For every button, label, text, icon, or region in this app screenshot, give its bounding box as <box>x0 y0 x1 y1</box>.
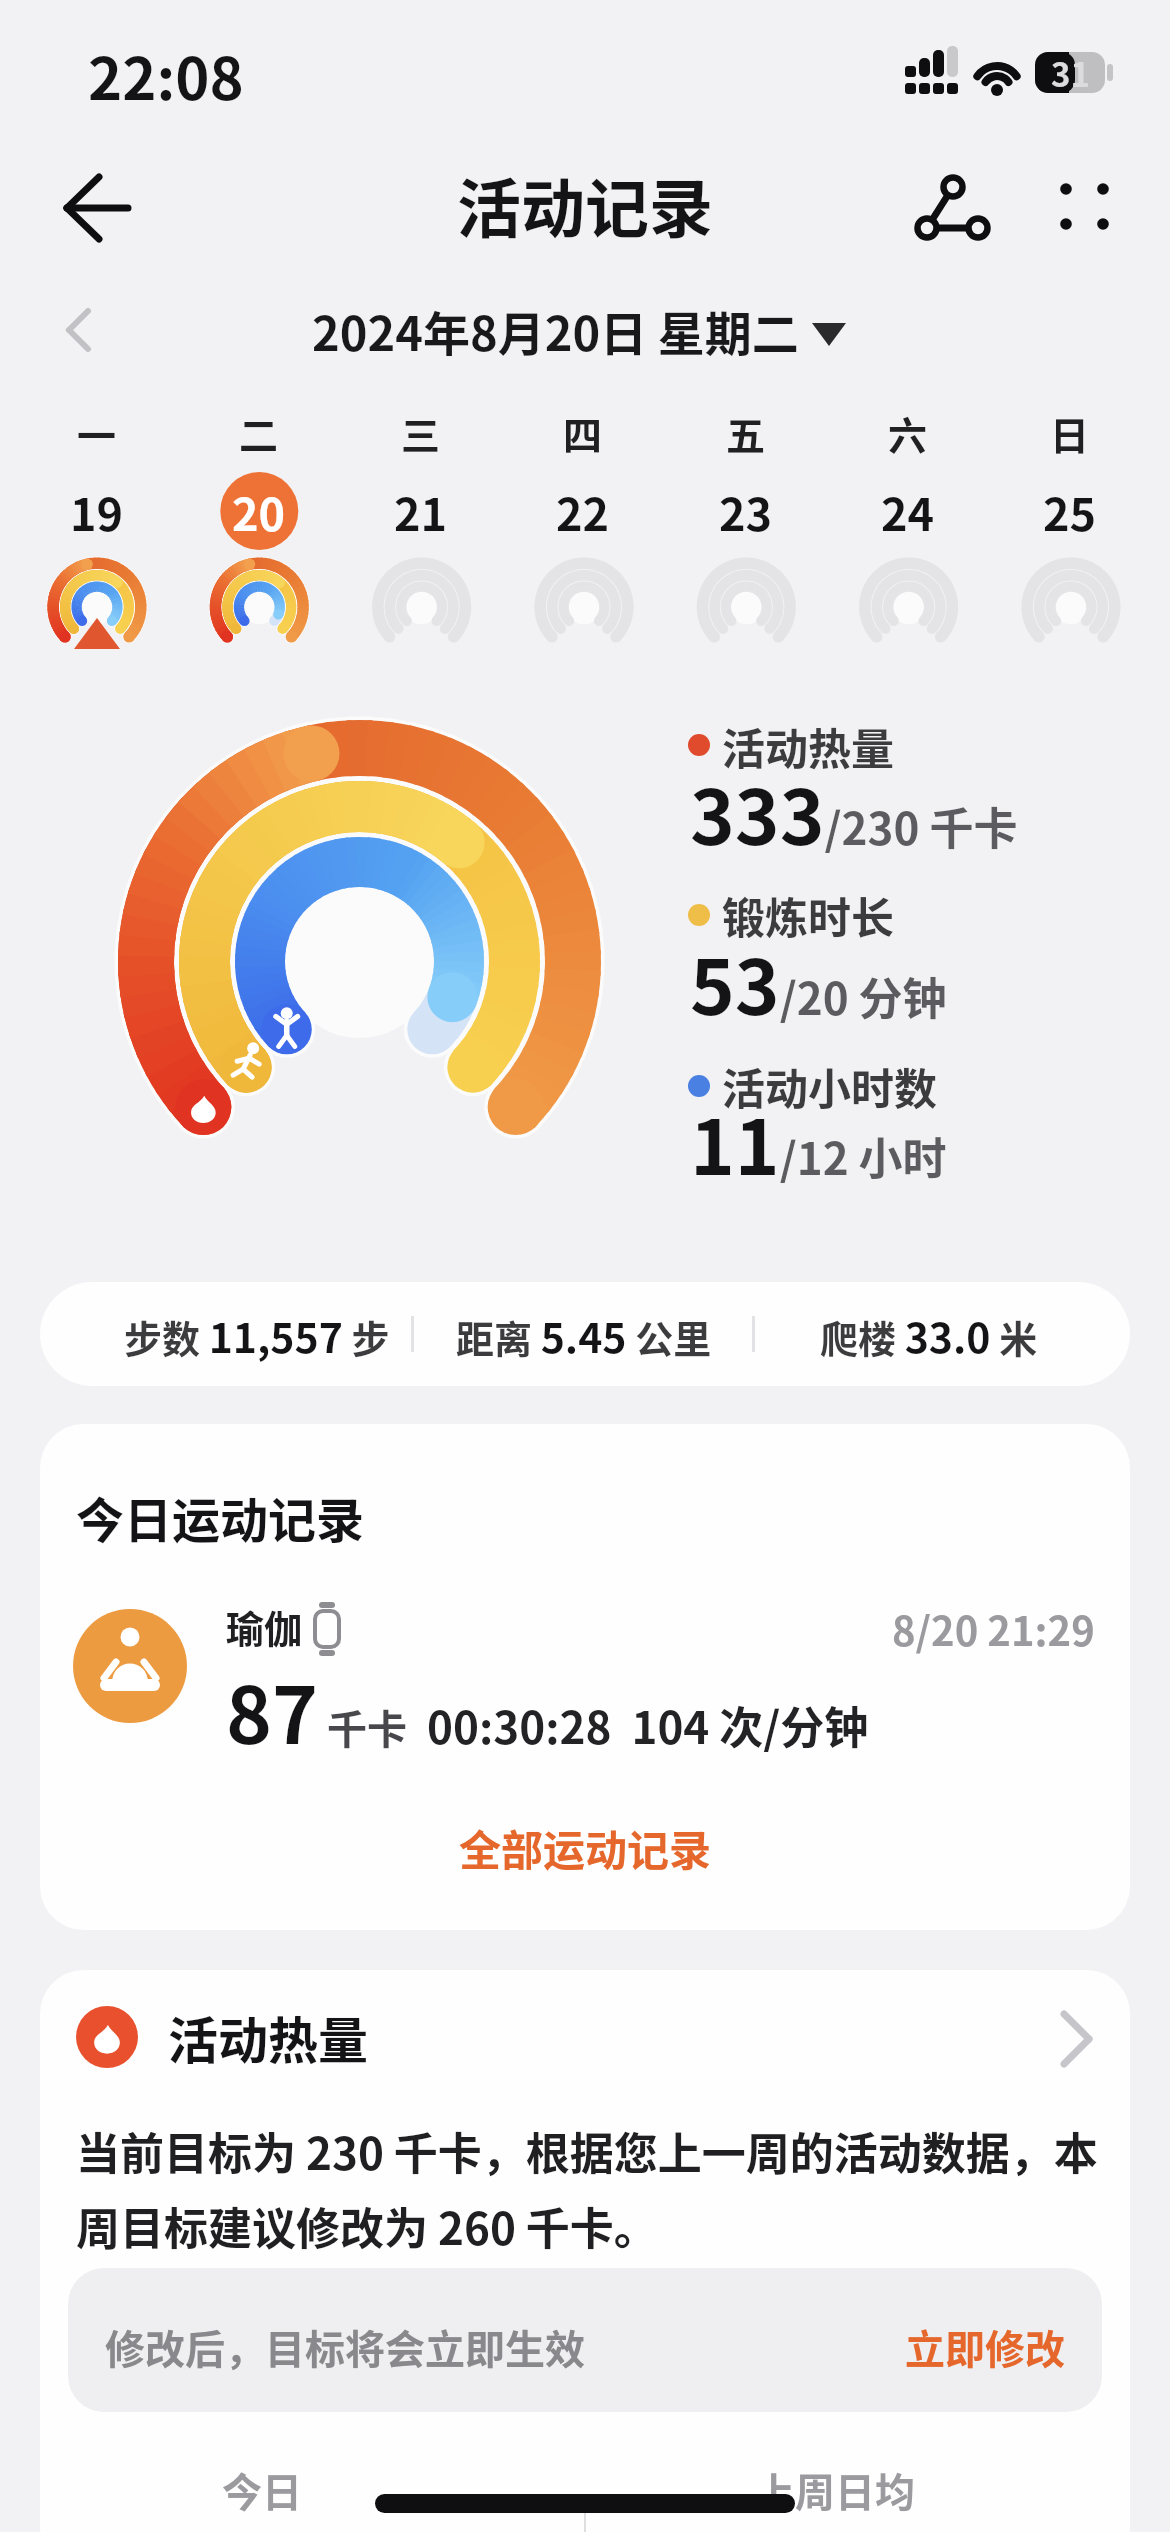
staticText: 上周日均 <box>755 2461 915 2519</box>
button[interactable] <box>838 390 978 670</box>
button[interactable] <box>68 2268 1102 2412</box>
staticText: 2024年8月20日 星期二 <box>312 296 799 364</box>
staticText: 立即修改 <box>905 2318 1065 2376</box>
staticText: 24 <box>881 479 935 544</box>
staticText: 锻炼时长 <box>722 884 894 946</box>
staticText: 活动热量 <box>168 2001 368 2073</box>
staticText: 87 千卡 00:30:28 104 次/分钟 <box>226 1654 869 1767</box>
button[interactable] <box>351 390 491 670</box>
staticText: 8/20 21:29 <box>892 1600 1095 1658</box>
button[interactable] <box>27 390 167 670</box>
staticText: 活动记录 <box>457 158 713 251</box>
button[interactable] <box>1000 390 1140 670</box>
staticText: 日 <box>1050 405 1090 461</box>
staticText: 25 <box>1043 479 1097 544</box>
staticText: 333/230 千卡 <box>690 757 1018 867</box>
button[interactable]: 全部运动记录 <box>400 1800 770 1895</box>
staticText: 活动热量 <box>722 715 894 777</box>
button[interactable] <box>40 1980 1130 2100</box>
staticText: 周目标建议修改为 260 千卡。 <box>76 2194 658 2258</box>
staticText: 修改后，目标将会立即生效 <box>105 2318 585 2376</box>
staticText: 一 <box>77 405 117 461</box>
staticText: 19 <box>70 479 124 544</box>
staticText: 22:08 <box>88 33 244 117</box>
staticText: 全部运动记录 <box>459 1817 712 1878</box>
staticText: 步数 11,557 步 <box>124 1305 390 1364</box>
button[interactable] <box>676 390 816 670</box>
staticText: 距离 5.45 公里 <box>456 1305 712 1364</box>
staticText: 二 <box>239 405 279 461</box>
button[interactable] <box>60 1590 1110 1760</box>
staticText: 三 <box>401 405 441 461</box>
staticText: 四 <box>563 405 603 461</box>
staticText: 22 <box>556 479 610 544</box>
staticText: 今日运动记录 <box>76 1482 365 1552</box>
staticText: 今日 <box>222 2461 302 2519</box>
staticText: 五 <box>726 405 766 461</box>
staticText: 21 <box>394 479 448 544</box>
button[interactable] <box>513 390 653 670</box>
staticText: 20 <box>232 479 286 544</box>
staticText: 爬楼 33.0 米 <box>820 1305 1038 1364</box>
staticText: 六 <box>888 405 928 461</box>
button[interactable] <box>189 390 329 670</box>
staticText: 11/12 小时 <box>690 1087 947 1197</box>
button[interactable] <box>40 1282 1130 1386</box>
staticText: 53/20 分钟 <box>690 927 947 1037</box>
staticText: 31 <box>1051 49 1090 97</box>
staticText: 瑜伽 <box>226 1599 303 1654</box>
staticText: 当前目标为 230 千卡，根据您上一周的活动数据，本 <box>76 2119 1098 2183</box>
staticText: 活动小时数 <box>722 1055 937 1117</box>
staticText: 23 <box>719 479 773 544</box>
